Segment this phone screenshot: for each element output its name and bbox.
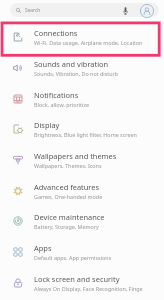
button[interactable]: Wallpapers and themes — [0, 144, 164, 175]
button[interactable]: Voice search — [120, 5, 131, 16]
staticText: Brightness, Blue light filter, Home scre… — [34, 131, 137, 138]
button[interactable]: Lock screen and security — [0, 267, 164, 298]
button[interactable]: Notifications — [0, 83, 164, 114]
button[interactable]: Connections — [0, 21, 164, 52]
staticText: Advanced features — [34, 182, 100, 192]
staticText: Default apps, App permissions — [34, 254, 112, 261]
staticText: Games, One-handed mode — [34, 193, 103, 200]
staticText: Search — [25, 7, 41, 14]
button[interactable]: Search — [16, 7, 41, 14]
staticText: Device maintenance — [34, 212, 105, 222]
button[interactable]: Sounds and vibration — [0, 52, 164, 83]
staticText: Wallpapers and themes — [34, 151, 117, 161]
button[interactable]: Device maintenance — [0, 205, 164, 236]
staticText: Display — [34, 120, 60, 130]
staticText: Lock screen and security — [34, 274, 120, 284]
staticText: Block, allow, prioritize — [34, 101, 90, 108]
staticText: Sounds, Vibration, Do not disturb — [34, 70, 119, 77]
staticText: Apps — [34, 243, 52, 253]
staticText: Always On Display, Face Recognition, Fin… — [34, 285, 143, 292]
button[interactable]: Apps — [0, 236, 164, 267]
staticText: Sounds and vibration — [34, 59, 109, 69]
staticText: Battery, Storage, Memory — [34, 223, 99, 230]
button[interactable]: Advanced features — [0, 175, 164, 206]
button[interactable]: Display — [0, 113, 164, 144]
staticText: Connections — [34, 28, 78, 38]
staticText: Wallpapers, Themes, Icons — [34, 162, 102, 169]
staticText: Wi-Fi, Data usage, Airplane mode, Locati… — [34, 39, 143, 46]
button[interactable]: Account — [139, 3, 154, 18]
button[interactable] — [10, 3, 159, 17]
staticText: Notifications — [34, 90, 79, 100]
